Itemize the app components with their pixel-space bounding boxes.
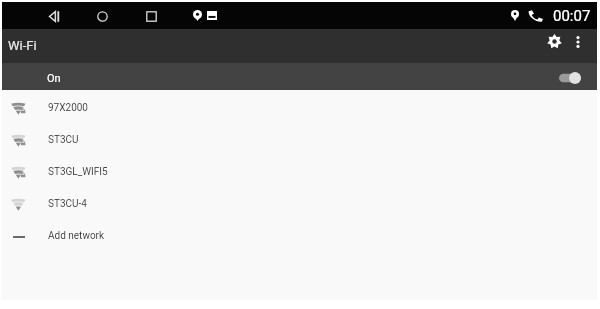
button[interactable]: ST3CU (2, 124, 597, 156)
button[interactable]: Advanced settings (541, 28, 567, 54)
button[interactable]: 97X2000 (2, 92, 597, 124)
button[interactable]: ST3CU-4 (2, 188, 597, 220)
staticText: ST3GL_WIFI5 (48, 166, 108, 178)
button[interactable]: Home (90, 4, 114, 28)
button[interactable]: Recent apps (139, 4, 163, 28)
button[interactable]: ST3GL_WIFI5 (2, 156, 597, 188)
button[interactable]: Back (42, 4, 66, 28)
staticText: On (47, 72, 61, 85)
button[interactable]: On (2, 63, 597, 90)
staticText: ST3CU-4 (48, 198, 87, 210)
button[interactable]: Add network (2, 220, 597, 252)
staticText: Wi-Fi (8, 38, 37, 53)
staticText: 97X2000 (48, 102, 88, 114)
button[interactable]: More options (565, 29, 591, 55)
staticText: Add network (48, 230, 105, 242)
staticText: 00:07 (553, 7, 591, 25)
staticText: ST3CU (48, 134, 79, 146)
